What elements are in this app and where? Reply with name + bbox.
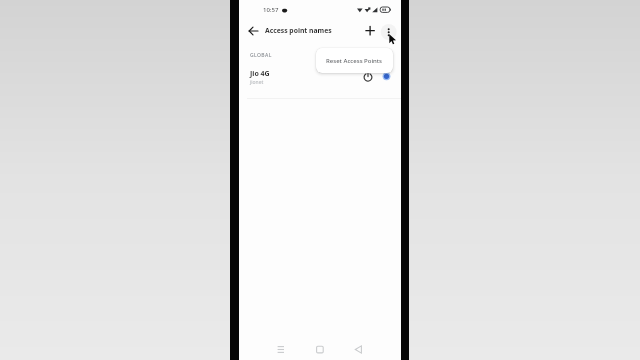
staticText: 10:57 (263, 6, 279, 14)
button[interactable] (362, 23, 378, 39)
button[interactable] (351, 342, 367, 357)
staticText: GLOBAL (250, 52, 272, 59)
button[interactable] (382, 23, 396, 39)
button[interactable]: Reset Access Points (316, 48, 393, 73)
staticText: Reset Access Points (326, 57, 383, 65)
staticText: Access point names (265, 26, 332, 35)
button[interactable] (273, 342, 289, 357)
button[interactable] (245, 23, 261, 39)
staticText: Jio 4G (250, 69, 270, 79)
button[interactable]: Jio 4G (239, 64, 401, 98)
staticText: jionet (250, 79, 264, 86)
button[interactable] (312, 342, 328, 357)
